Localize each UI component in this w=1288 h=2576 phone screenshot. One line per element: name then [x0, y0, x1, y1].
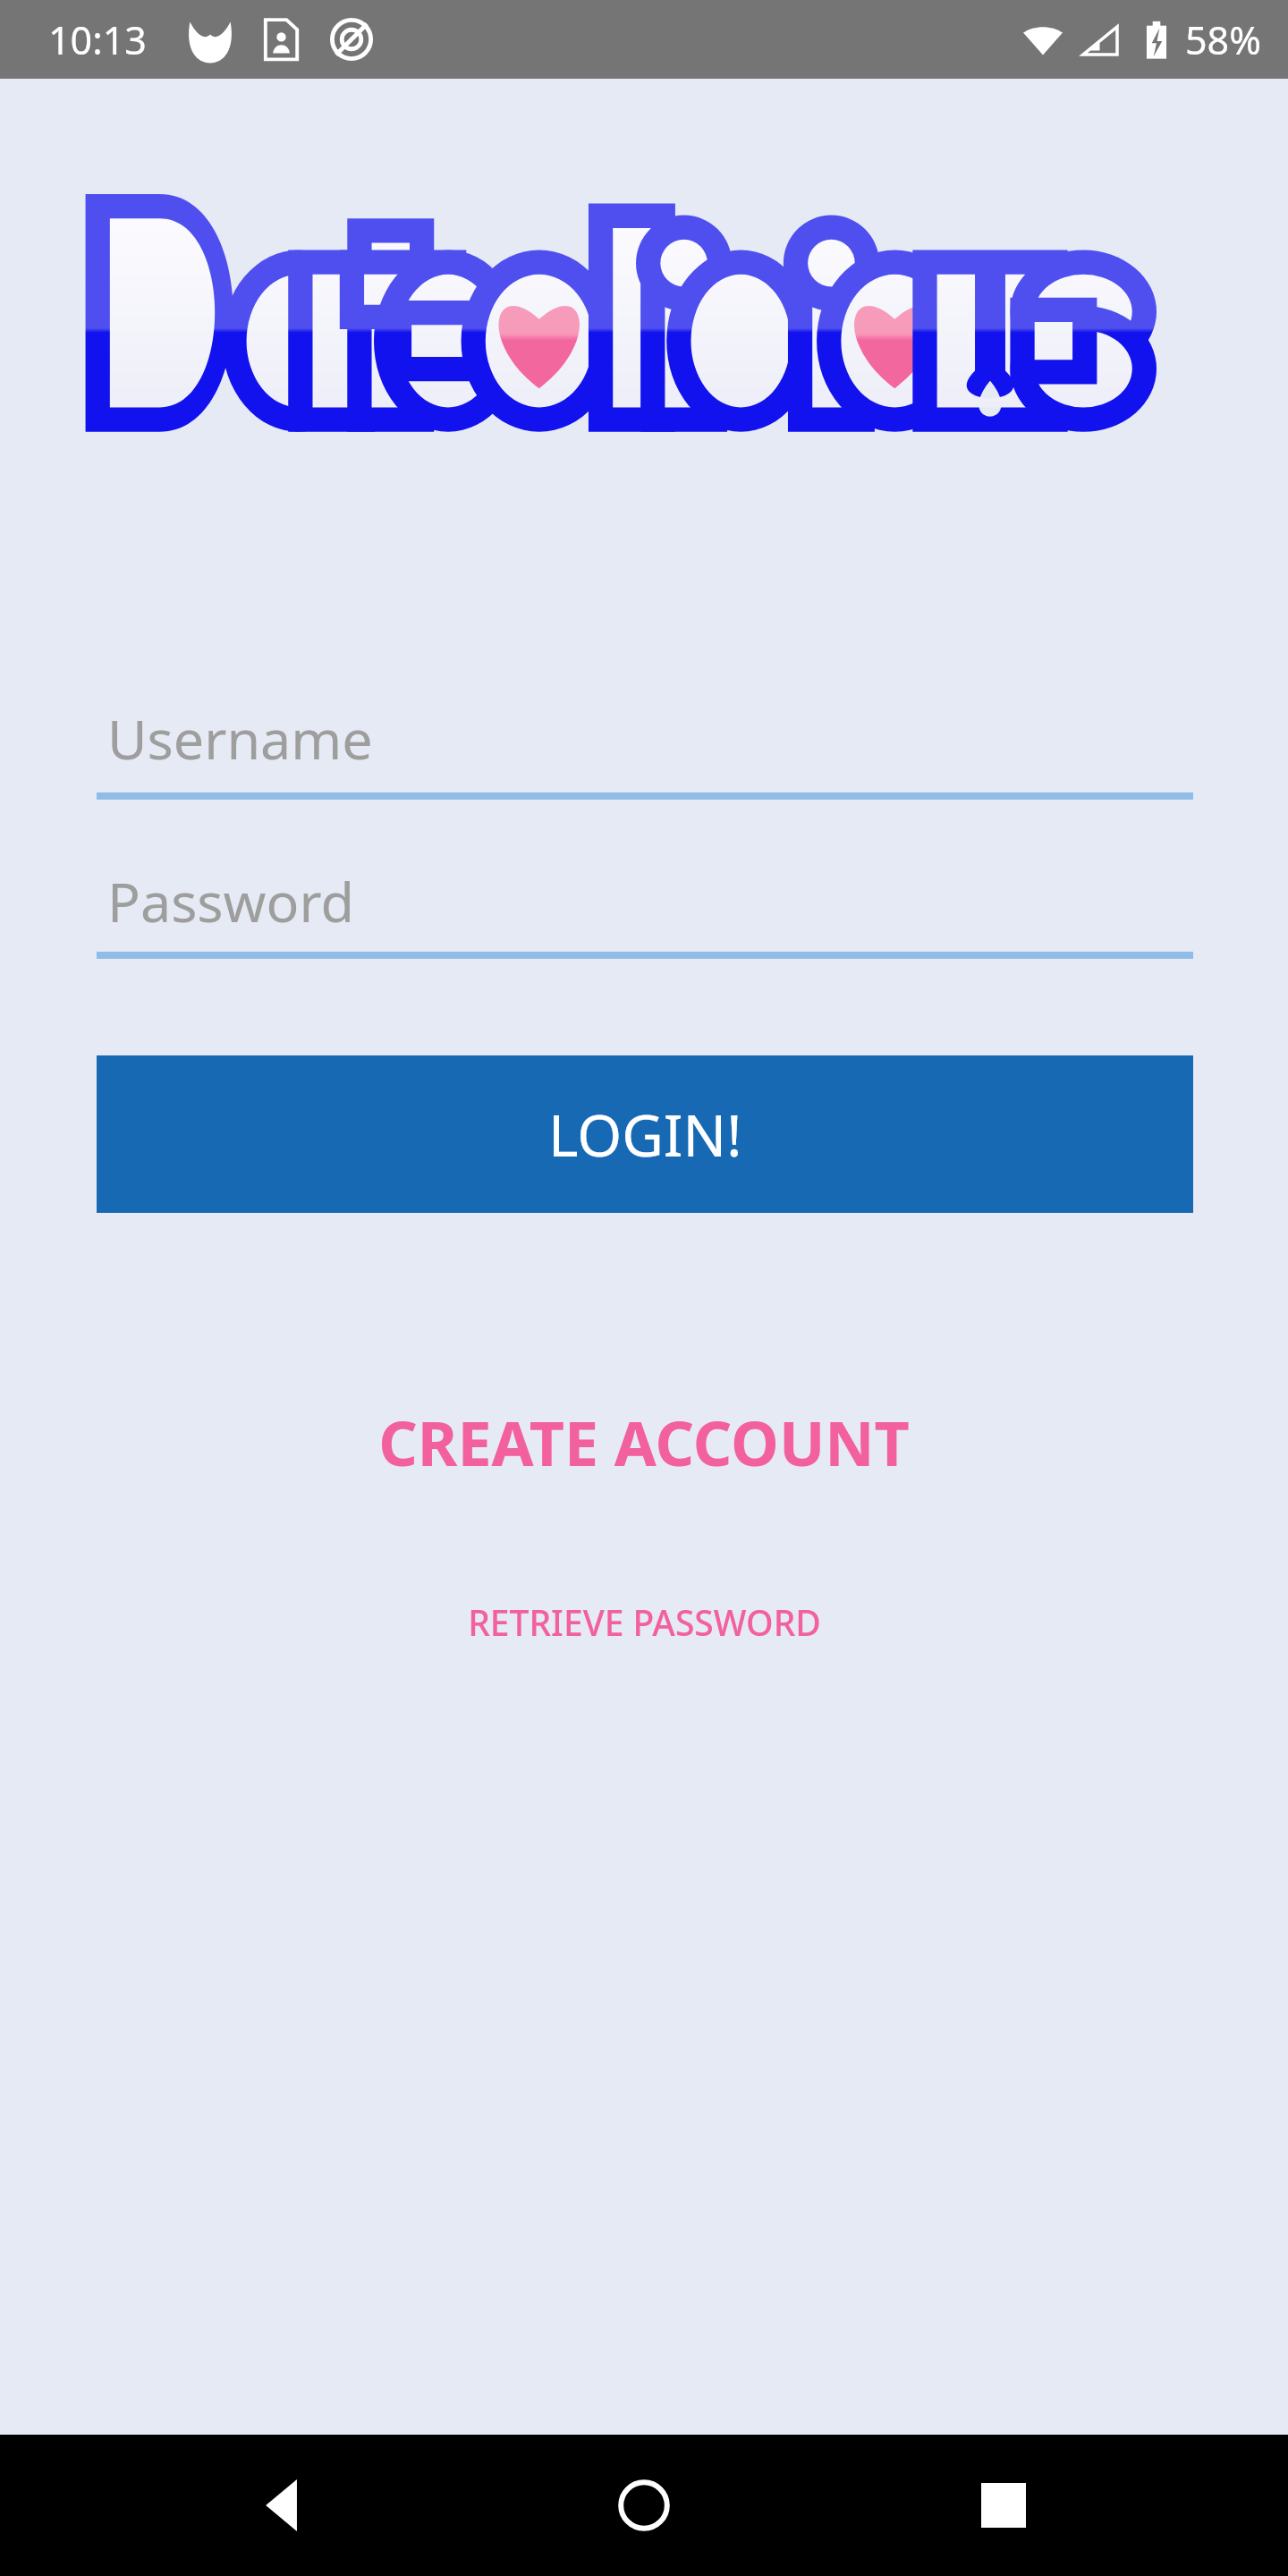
staticText: RETRIEVE PASSWORD [468, 1598, 821, 1646]
staticText: Password [107, 864, 354, 938]
button[interactable]: Home [589, 2450, 699, 2561]
button[interactable]: Back [229, 2450, 340, 2561]
button[interactable]: Username [97, 701, 1193, 809]
button[interactable]: CREATE ACCOUNT [0, 1379, 1288, 1504]
staticText: 10:13 [48, 13, 147, 66]
staticText: Username [107, 701, 373, 775]
button[interactable]: Recent apps [948, 2450, 1059, 2561]
staticText: CREATE ACCOUNT [378, 1401, 910, 1484]
button[interactable]: Password [97, 864, 1193, 971]
button[interactable]: LOGIN! [97, 1055, 1193, 1213]
staticText: LOGIN! [548, 1096, 742, 1174]
button[interactable]: RETRIEVE PASSWORD [0, 1571, 1288, 1673]
staticText: 58% [1185, 13, 1261, 66]
